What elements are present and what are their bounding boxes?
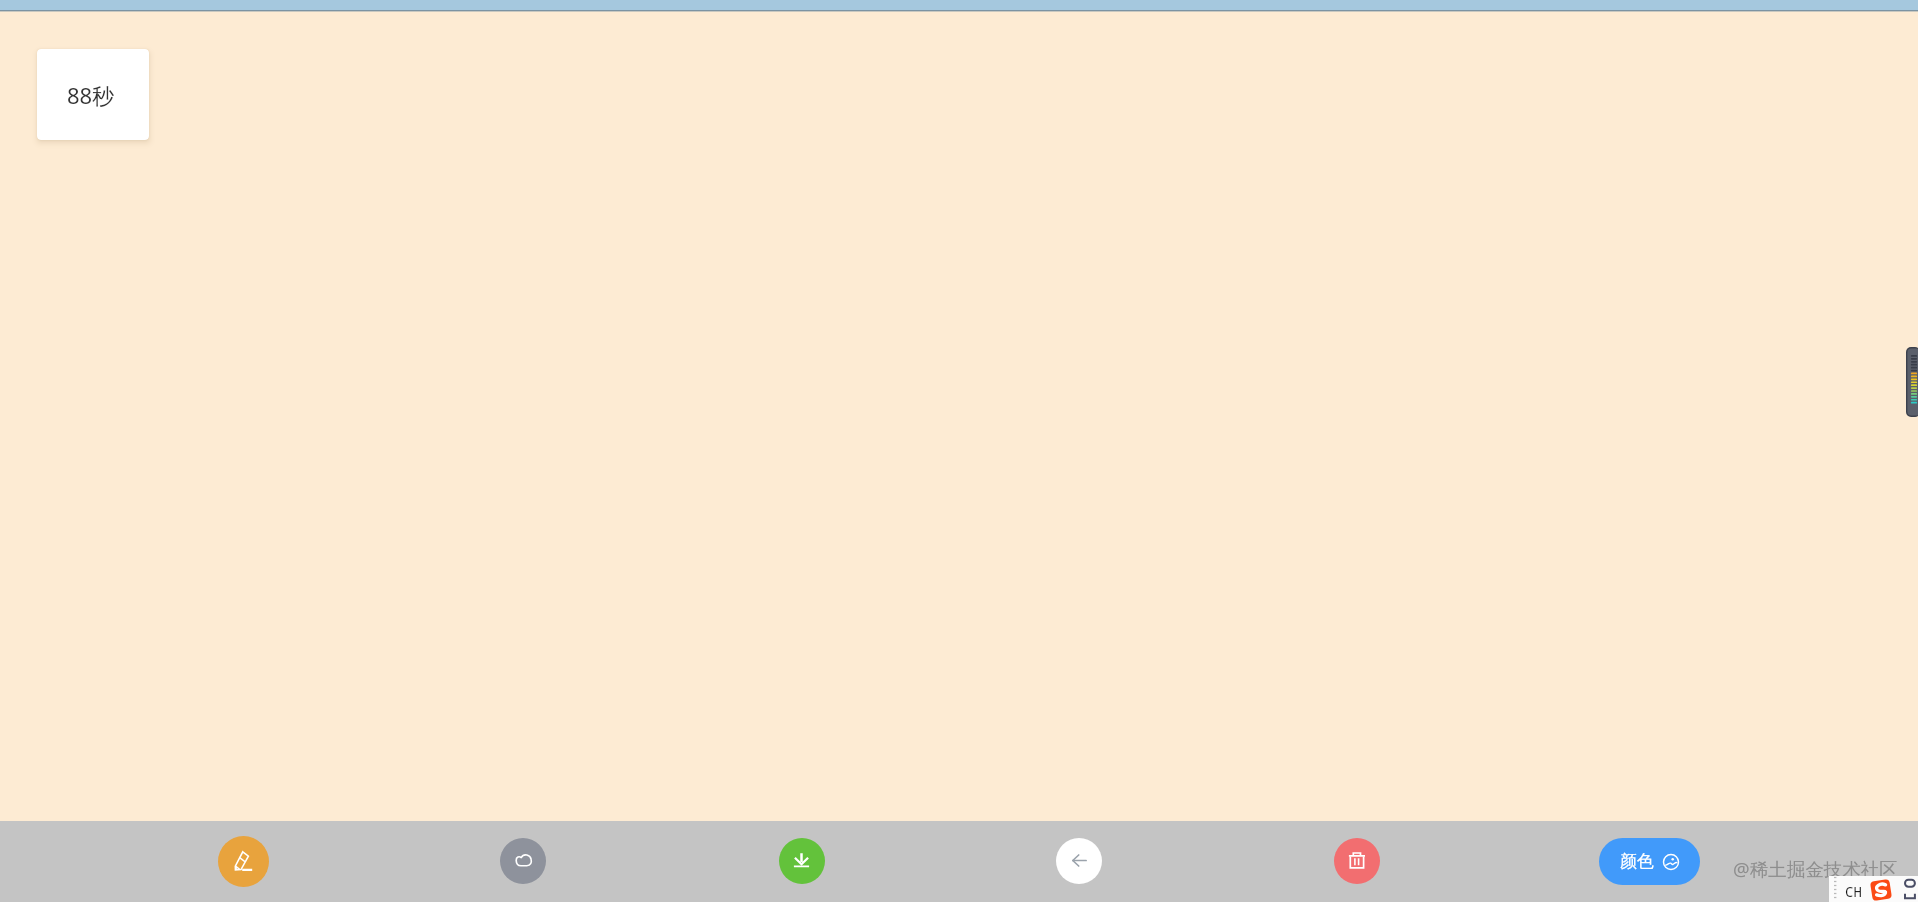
button[interactable]: Delete (1334, 838, 1380, 884)
button[interactable]: Cloud save (500, 838, 546, 884)
button[interactable]: 颜色 (1599, 838, 1700, 885)
button[interactable]: Pen tool (218, 836, 269, 887)
staticText: 颜色 (1620, 851, 1654, 872)
staticText: 88秒 (67, 80, 115, 110)
button[interactable]: Download (779, 838, 825, 884)
button[interactable]: 88秒 (37, 49, 149, 140)
button[interactable]: Sogou input method (1829, 876, 1918, 902)
staticText: CH (1845, 882, 1862, 901)
button[interactable]: Back (1056, 838, 1102, 884)
button[interactable]: Colour picker (1906, 347, 1918, 417)
staticText: @稀土掘金技术社区 (1733, 856, 1898, 881)
